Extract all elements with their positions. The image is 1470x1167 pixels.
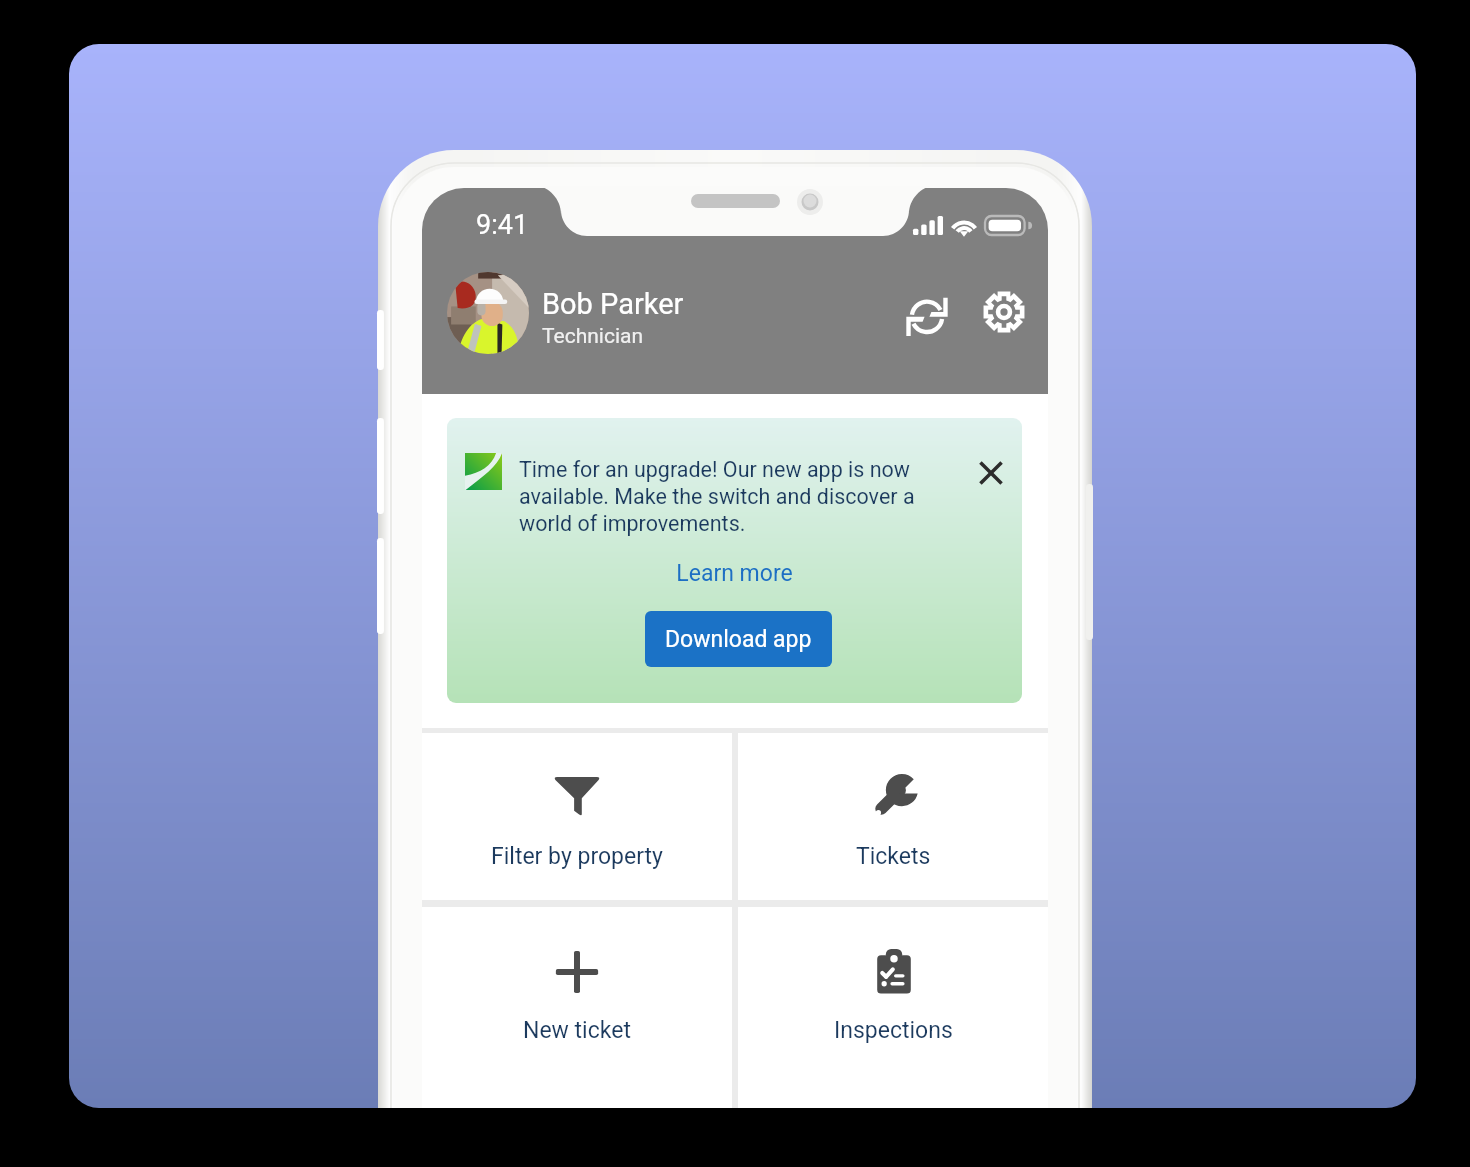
staticText: Technician <box>542 324 644 349</box>
button[interactable]: Learn more <box>447 560 1022 587</box>
button[interactable]: Close <box>967 449 1015 497</box>
button[interactable]: Download app <box>645 611 832 667</box>
staticText: Filter by property <box>491 843 663 870</box>
staticText: Inspections <box>834 1017 953 1044</box>
staticText: Download app <box>665 626 812 653</box>
staticText: Bob Parker <box>542 287 684 321</box>
staticText: Tickets <box>856 843 931 870</box>
staticText: New ticket <box>523 1017 631 1044</box>
staticText: 9:41 <box>476 209 529 241</box>
button[interactable]: Inspections <box>738 907 1048 1108</box>
button[interactable]: Sync <box>898 285 956 343</box>
button[interactable]: Filter by property <box>422 733 732 900</box>
button[interactable]: Settings <box>975 283 1033 341</box>
staticText: Time for an upgrade! Our new app is now … <box>519 457 923 537</box>
button[interactable]: New ticket <box>422 907 732 1108</box>
button[interactable]: Tickets <box>738 733 1048 900</box>
